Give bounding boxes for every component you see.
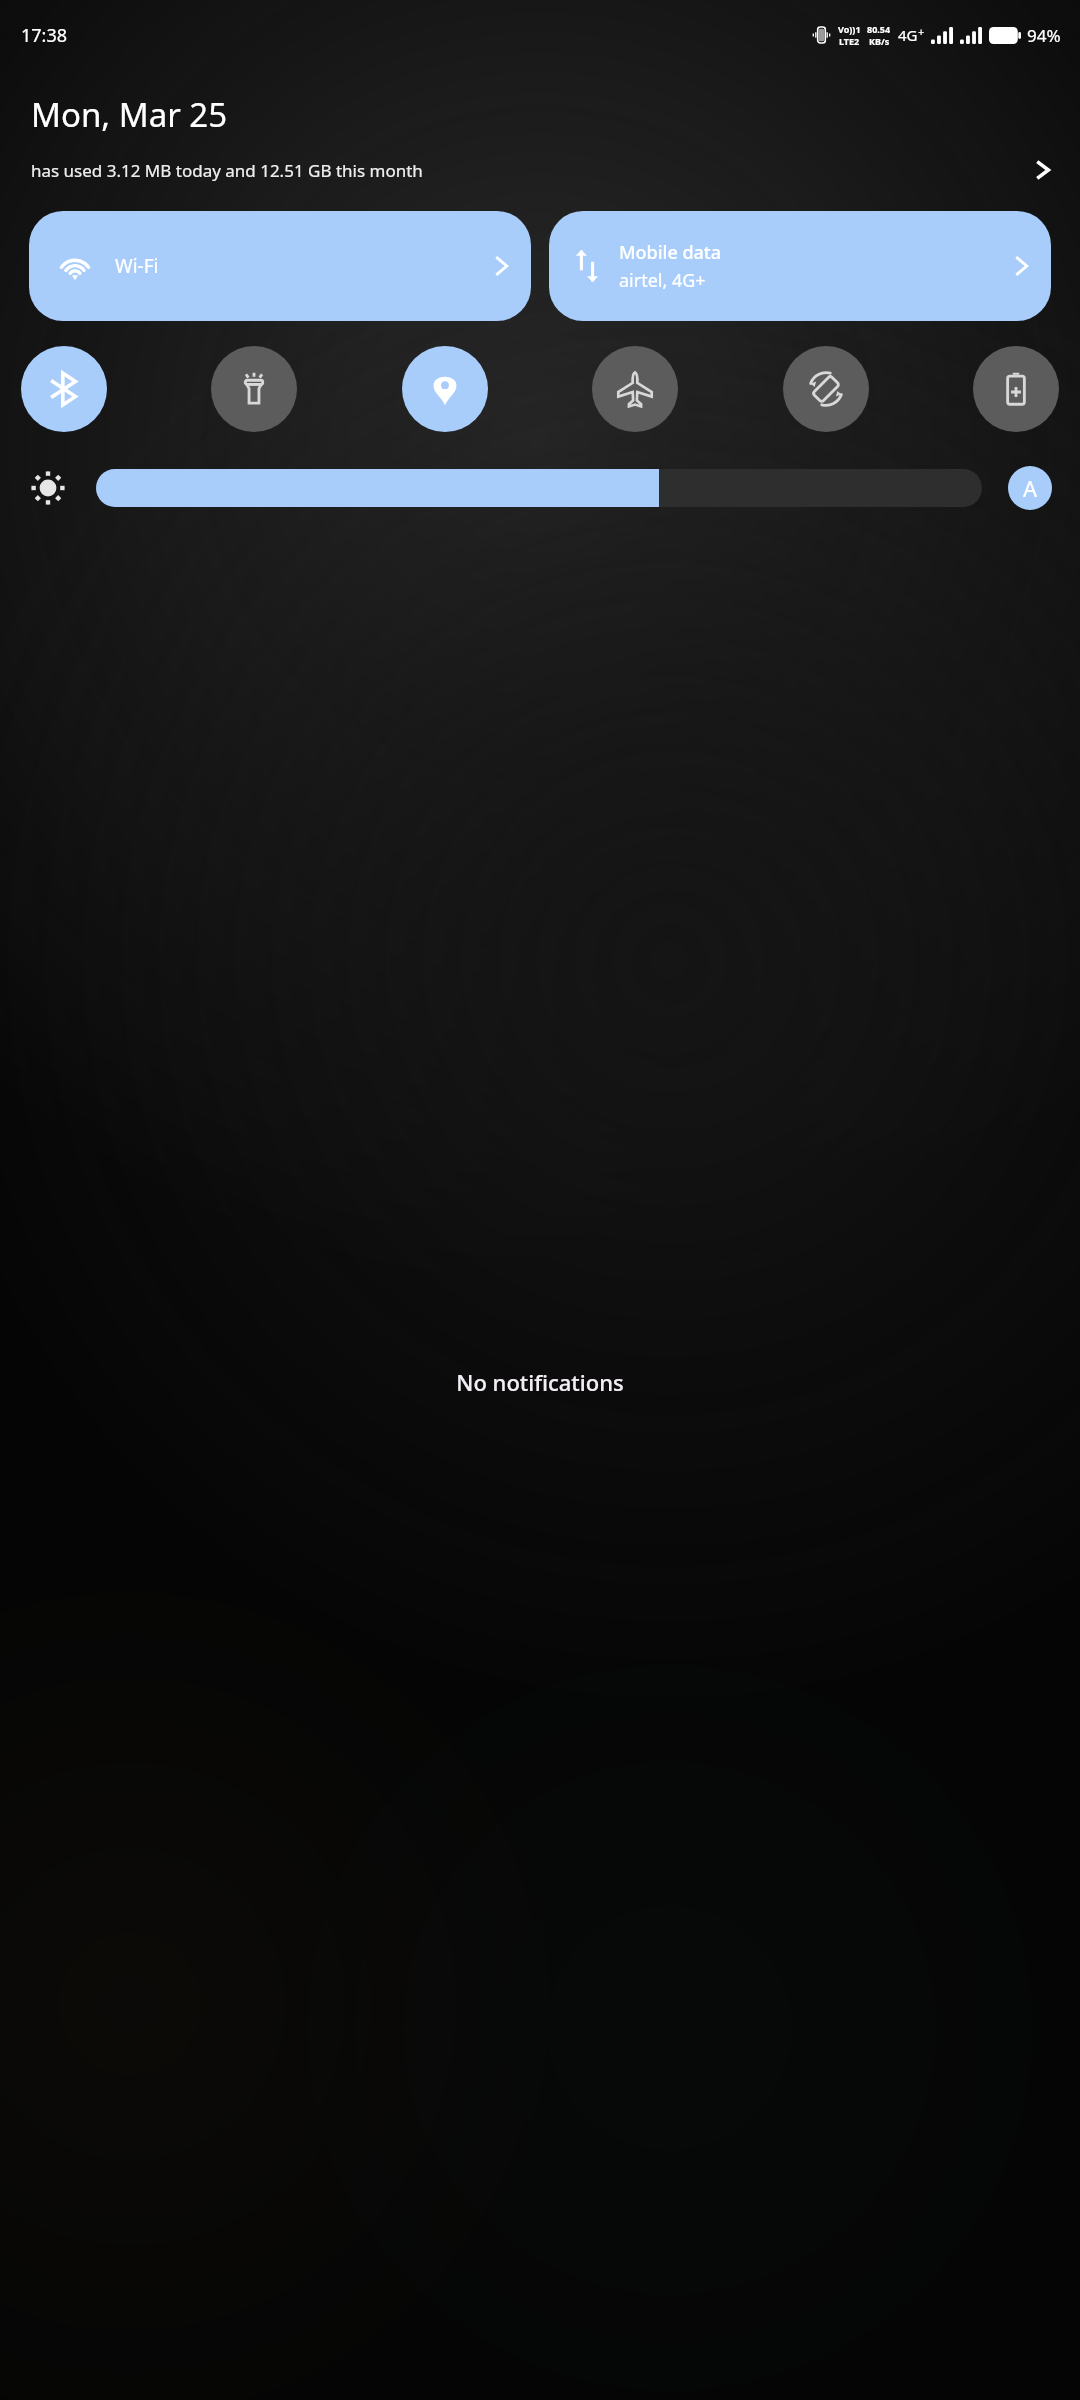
button[interactable]: Auto brightness [1008, 466, 1052, 510]
staticText: has used 3.12 MB today and 12.51 GB this… [31, 159, 423, 182]
staticText: Mobile data [619, 240, 722, 265]
staticText: No notifications [0, 1367, 1080, 1397]
staticText: A [1023, 473, 1038, 503]
staticText: Vo))1 [838, 23, 861, 35]
button[interactable]: has used 3.12 MB today and 12.51 GB this… [0, 151, 1080, 189]
staticText: airtel, 4G+ [619, 268, 706, 293]
button[interactable]: Flashlight [211, 346, 297, 432]
button[interactable]: Wi-Fi [29, 211, 531, 321]
button[interactable]: Battery saver [973, 346, 1059, 432]
button[interactable]: Airplane mode [592, 346, 678, 432]
button[interactable]: Brightness [96, 469, 982, 507]
button[interactable]: Location [402, 346, 488, 432]
staticText: Mon, Mar 25 [31, 92, 228, 137]
button[interactable]: Bluetooth [21, 346, 107, 432]
staticText: 17:38 [21, 23, 68, 48]
staticText: + [918, 24, 925, 39]
staticText: Wi-Fi [115, 253, 159, 279]
button[interactable]: Mobile data [549, 211, 1051, 321]
staticText: LTE2 [839, 35, 860, 47]
button[interactable]: Auto-rotate [783, 346, 869, 432]
staticText: 4G [898, 25, 918, 45]
staticText: KB/s [869, 35, 890, 47]
staticText: 80.54 [867, 23, 891, 35]
staticText: 94% [1027, 24, 1061, 47]
